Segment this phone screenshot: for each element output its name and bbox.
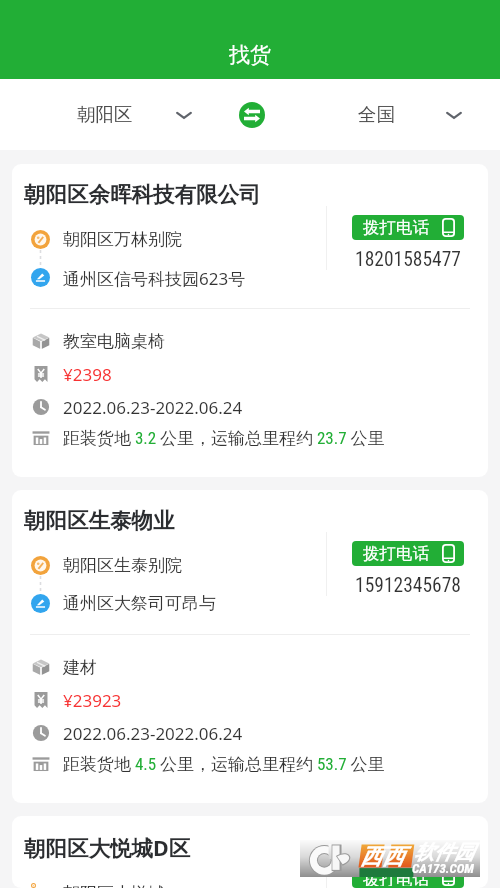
staticText: 2022.06.23-2022.06.24 — [63, 722, 243, 744]
staticText: 朝阳区生泰别院 — [63, 555, 182, 576]
staticText: 2022.06.23-2022.06.24 — [63, 396, 243, 418]
staticText: 朝阳区 — [77, 103, 133, 126]
staticText: CA173.COM — [412, 861, 474, 876]
staticText: 朝阳区余晖科技有限公司 — [24, 181, 261, 208]
button[interactable]: 全国 — [358, 103, 463, 126]
button[interactable]: 朝阳区生泰物业 — [12, 490, 488, 803]
staticText: 距装货地 4.5 公里，运输总里程约 53.7 公里 — [63, 754, 385, 775]
button[interactable]: Swap locations — [239, 102, 265, 128]
button[interactable]: 朝阳区 — [77, 103, 193, 126]
staticText: 朝阳区生泰物业 — [24, 507, 175, 534]
staticText: 朝阳区万林别院 — [63, 229, 182, 250]
staticText: 拨打电话 — [363, 217, 429, 238]
button[interactable]: 朝阳区大悦城D区 — [12, 816, 488, 888]
staticText: 15912345678 — [355, 574, 461, 597]
staticText: 建材 — [63, 657, 97, 678]
staticText: ¥23923 — [63, 689, 122, 711]
button[interactable]: 拨打电话 — [352, 215, 464, 240]
button[interactable]: 拨打电话 — [352, 867, 464, 888]
button[interactable]: 朝阳区余晖科技有限公司 — [12, 164, 488, 477]
staticText: 拨打电话 — [363, 869, 429, 886]
staticText: 通州区信号科技园623号 — [63, 267, 246, 288]
staticText: 教室电脑桌椅 — [63, 331, 165, 352]
staticText: 拨打电话 — [363, 543, 429, 564]
staticText: ¥2398 — [63, 363, 112, 385]
staticText: 朝阳区大悦城D区 — [24, 833, 191, 862]
staticText: 通州区大祭司可昂与 — [63, 593, 216, 614]
staticText: 18201585477 — [355, 248, 461, 271]
staticText: 全国 — [358, 103, 395, 126]
button[interactable]: 拨打电话 — [352, 541, 464, 566]
staticText: 西西 — [360, 843, 404, 871]
staticText: 找货 — [229, 42, 271, 68]
staticText: 朝阳区大悦城 — [63, 883, 165, 888]
staticText: 软件园 — [414, 840, 474, 865]
staticText: 距装货地 3.2 公里，运输总里程约 23.7 公里 — [63, 428, 385, 449]
